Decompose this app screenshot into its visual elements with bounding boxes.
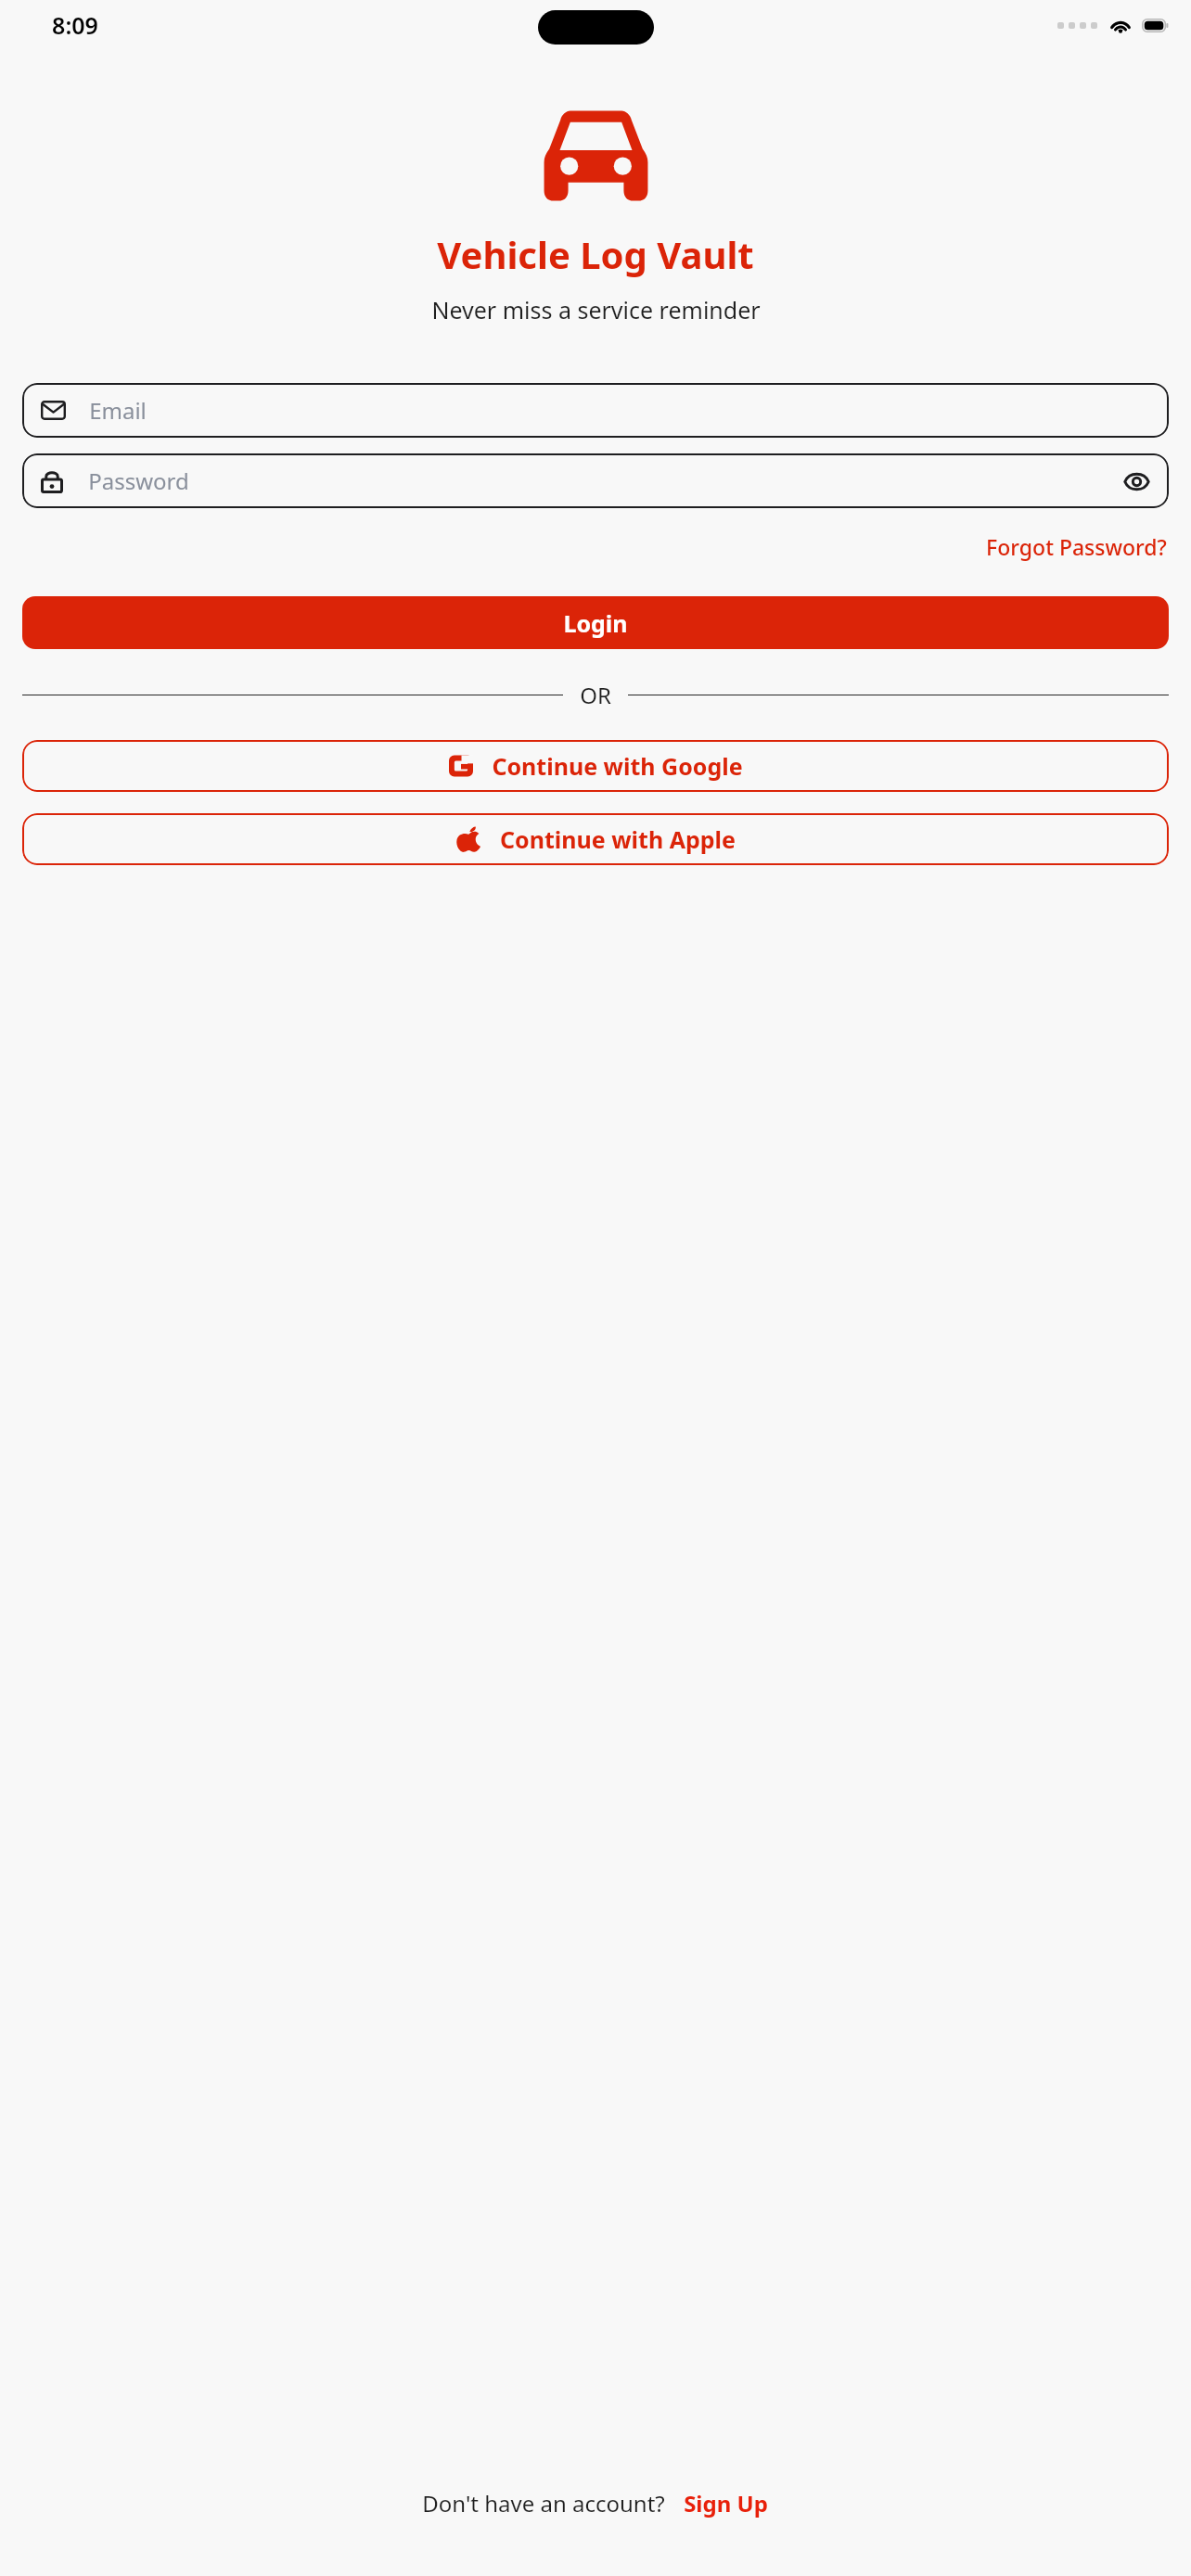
button[interactable]: Login: [22, 596, 1169, 649]
staticText: Continue with Apple: [500, 823, 736, 855]
staticText: Email: [89, 395, 147, 426]
staticText: Vehicle Log Vault: [437, 229, 754, 279]
staticText: Never miss a service reminder: [431, 294, 761, 325]
staticText: Forgot Password?: [986, 532, 1167, 561]
button[interactable]: Continue with Apple: [22, 813, 1169, 865]
staticText: 8:09: [52, 9, 98, 41]
staticText: Sign Up: [684, 2488, 768, 2519]
button[interactable]: Continue with Google: [22, 740, 1169, 792]
staticText: Password: [88, 465, 189, 496]
button[interactable]: Show password: [1121, 465, 1152, 497]
staticText: OR: [580, 680, 611, 710]
button[interactable]: Password: [22, 453, 1169, 508]
button[interactable]: Forgot Password?: [984, 529, 1169, 565]
staticText: Login: [563, 607, 628, 639]
staticText: Continue with Google: [492, 750, 743, 782]
button[interactable]: Email: [22, 383, 1169, 438]
staticText: Don't have an account?: [422, 2488, 665, 2519]
button[interactable]: Sign Up: [682, 2484, 770, 2522]
